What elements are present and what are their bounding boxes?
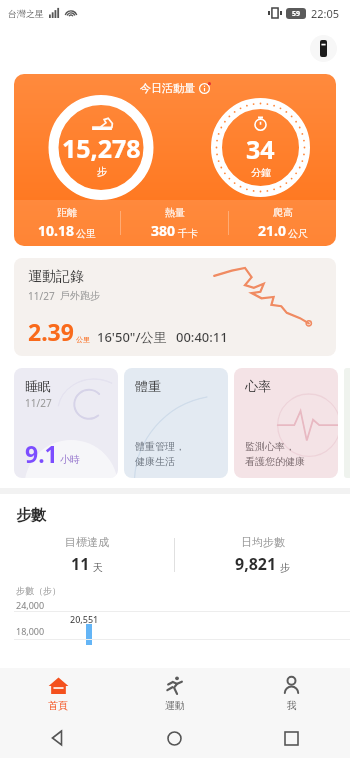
staticText: 公里 [76,335,90,344]
staticText: 看護您的健康 [245,455,305,468]
staticText: 步數 [16,506,46,525]
staticText: 運動記錄 [28,268,84,286]
staticText: 睡眠 [25,378,51,394]
staticText: 10.18 [38,221,74,240]
button[interactable]: 首頁 [0,668,116,718]
staticText: 2.39 [28,316,74,347]
staticText: 11/27 [25,396,52,410]
staticText: 380 [151,221,176,240]
button[interactable]: 體重 [124,368,228,478]
staticText: 公里 [76,227,96,240]
button[interactable]: 我 [233,668,350,718]
staticText: 步 [97,165,107,178]
staticText: 我 [287,699,297,712]
staticText: 爬高 [273,206,293,219]
staticText: 監測心率， [245,440,295,453]
staticText: 小時 [60,453,80,466]
staticText: 11/27 [28,289,55,303]
staticText: 00:40:11 [176,328,228,346]
staticText: 步數（步） [16,585,61,596]
button[interactable]: 運動記錄 [14,258,336,356]
button[interactable]: 今日活動量 [14,74,336,246]
staticText: 16'50"/公里 [97,328,167,346]
staticText: 分鐘 [251,166,271,179]
staticText: 11 [71,553,90,575]
staticText: 戶外跑步 [60,289,100,302]
staticText: 今日活動量 [140,81,195,95]
staticText: 千卡 [178,227,198,240]
staticText: 台灣之星 [8,8,44,19]
staticText: 9.1 [25,438,58,469]
staticText: 首頁 [48,699,68,712]
staticText: 22:05 [311,6,340,21]
staticText: 18,000 [16,625,45,637]
button[interactable]: Device [310,35,337,62]
button[interactable]: 心率 [234,368,338,478]
staticText: 健康生活 [135,455,175,468]
staticText: 熱量 [165,206,185,219]
staticText: 運動 [165,699,185,712]
staticText: 34 [246,132,275,166]
staticText: 距離 [57,206,77,219]
button[interactable]: 步數 [0,494,350,645]
button[interactable]: 睡眠 [14,368,118,478]
staticText: 公尺 [288,227,308,240]
staticText: 體重 [135,378,161,394]
staticText: 9,821 [235,553,277,575]
staticText: 20,551 [70,613,99,625]
button[interactable]: 運動 [116,668,233,718]
staticText: 體重管理， [135,440,185,453]
staticText: 24,000 [16,599,45,611]
staticText: 21.0 [258,221,286,240]
staticText: 目標達成 [65,535,109,549]
staticText: 15,278 [62,131,141,165]
staticText: 59 [292,9,301,19]
staticText: 天 [93,561,103,574]
staticText: 日均步數 [241,535,285,549]
staticText: 步 [280,561,290,574]
staticText: 心率 [245,378,271,394]
